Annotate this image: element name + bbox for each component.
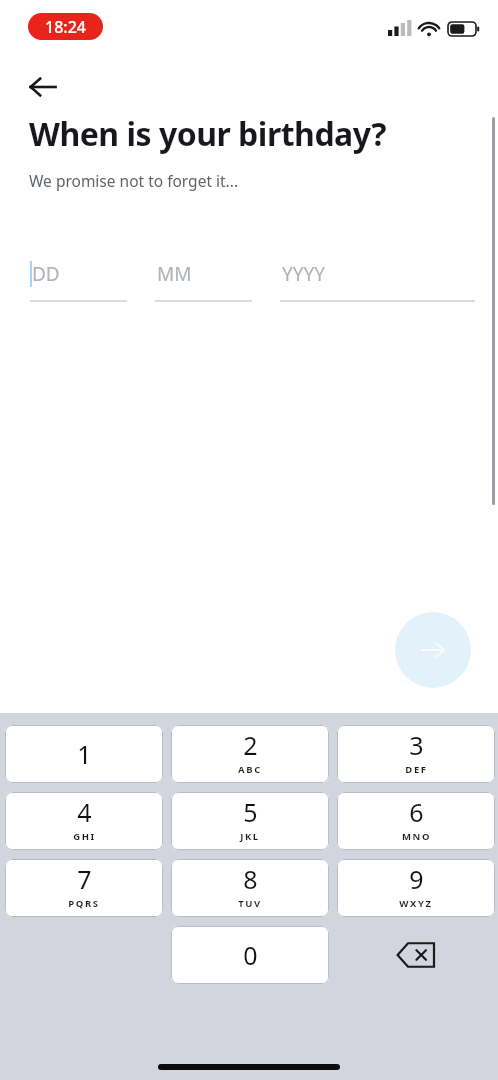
staticText: 18:24 bbox=[45, 16, 86, 38]
button[interactable]: DD bbox=[30, 258, 127, 308]
staticText: WXYZ bbox=[399, 897, 433, 910]
staticText: MM bbox=[157, 261, 192, 287]
button[interactable]: 7 bbox=[5, 859, 163, 917]
staticText: GHI bbox=[73, 830, 96, 843]
staticText: YYYY bbox=[282, 261, 326, 287]
staticText: 3 bbox=[409, 728, 424, 762]
staticText: DEF bbox=[405, 763, 428, 776]
staticText: 0 bbox=[243, 938, 258, 972]
staticText: ABC bbox=[238, 763, 262, 776]
staticText: When is your birthday? bbox=[29, 112, 386, 156]
staticText: 6 bbox=[409, 795, 424, 829]
button[interactable]: 5 bbox=[171, 792, 329, 850]
button[interactable]: MM bbox=[155, 258, 252, 308]
staticText: 5 bbox=[243, 795, 258, 829]
staticText: 7 bbox=[77, 862, 92, 896]
button[interactable]: YYYY bbox=[280, 258, 475, 308]
staticText: 4 bbox=[77, 795, 92, 829]
staticText: 2 bbox=[243, 728, 258, 762]
button[interactable]: 0 bbox=[171, 926, 329, 984]
button[interactable]: 9 bbox=[337, 859, 495, 917]
staticText: 1 bbox=[77, 737, 92, 771]
staticText: PQRS bbox=[68, 897, 100, 910]
button[interactable]: Back bbox=[18, 62, 68, 112]
button[interactable]: Backspace bbox=[337, 926, 495, 984]
staticText: We promise not to forget it... bbox=[29, 170, 239, 191]
button[interactable]: 1 bbox=[5, 725, 163, 783]
button[interactable]: 2 bbox=[171, 725, 329, 783]
staticText: JKL bbox=[240, 830, 260, 843]
staticText: MNO bbox=[402, 830, 431, 843]
button[interactable]: 3 bbox=[337, 725, 495, 783]
staticText: TUV bbox=[238, 897, 262, 910]
button[interactable]: 6 bbox=[337, 792, 495, 850]
staticText: 8 bbox=[243, 862, 258, 896]
staticText: 9 bbox=[409, 862, 424, 896]
button[interactable]: 8 bbox=[171, 859, 329, 917]
button[interactable]: Continue bbox=[395, 612, 471, 688]
staticText: DD bbox=[32, 261, 60, 287]
button[interactable]: 4 bbox=[5, 792, 163, 850]
